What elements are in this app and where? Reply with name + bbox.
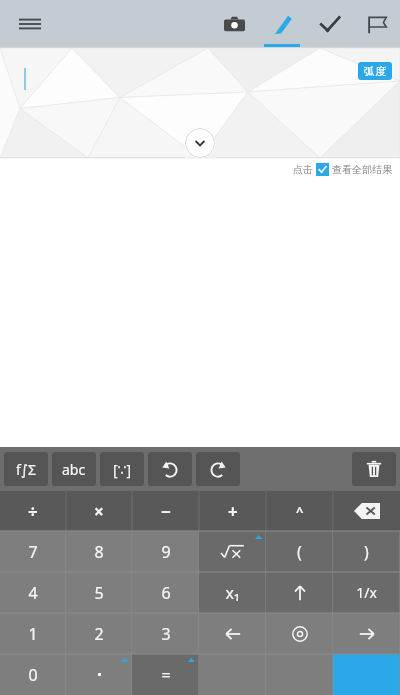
button[interactable]: Confirm xyxy=(306,0,354,48)
button[interactable]: + xyxy=(199,491,266,531)
button[interactable]: 弧度 xyxy=(358,62,392,80)
staticText: f∫Σ xyxy=(16,460,37,479)
staticText: x₁ xyxy=(225,582,240,604)
button[interactable] xyxy=(333,613,400,654)
button[interactable]: 9 xyxy=(132,531,199,572)
staticText: = xyxy=(161,664,171,686)
staticText: 6 xyxy=(161,582,171,604)
button[interactable]: 3 xyxy=(132,613,199,654)
staticText: abc xyxy=(62,460,86,479)
button[interactable] xyxy=(266,572,333,613)
staticText: 7 xyxy=(28,541,38,563)
staticText: 查看全部结果 xyxy=(332,163,392,176)
button[interactable] xyxy=(266,613,333,654)
button[interactable]: 5 xyxy=(66,572,132,613)
button[interactable]: 0 xyxy=(0,654,66,695)
button[interactable]: Redo xyxy=(196,452,240,486)
staticText: 1 xyxy=(28,623,38,645)
button[interactable]: ^ xyxy=(266,491,333,531)
button[interactable]: = xyxy=(132,654,199,695)
staticText: ( xyxy=(297,541,302,563)
button[interactable]: ÷ xyxy=(0,491,66,531)
button[interactable]: 8 xyxy=(66,531,132,572)
staticText: 9 xyxy=(161,541,171,563)
button[interactable]: 1 xyxy=(0,613,66,654)
button[interactable]: 4 xyxy=(0,572,66,613)
button[interactable]: Edit xyxy=(258,0,306,48)
staticText: × xyxy=(94,500,104,523)
staticText: 点击 xyxy=(293,163,313,176)
button[interactable]: x₁ xyxy=(199,572,266,613)
button[interactable]: 7 xyxy=(0,531,66,572)
button[interactable]: Expand xyxy=(185,128,215,158)
button[interactable]: 2 xyxy=(66,613,132,654)
button[interactable] xyxy=(66,654,132,695)
staticText: + xyxy=(228,500,238,523)
button[interactable]: Flag xyxy=(354,0,400,48)
button[interactable]: Backspace xyxy=(333,491,400,531)
staticText: − xyxy=(161,500,171,523)
staticText: 8 xyxy=(94,541,104,563)
button[interactable]: ( xyxy=(266,531,333,572)
button[interactable]: Camera xyxy=(210,0,258,48)
button[interactable] xyxy=(333,654,400,695)
staticText: ^ xyxy=(296,502,304,520)
button[interactable]: 6 xyxy=(132,572,199,613)
staticText: 2 xyxy=(94,623,104,645)
staticText: 5 xyxy=(94,582,104,604)
button[interactable]: Menu xyxy=(10,4,50,44)
staticText: 1/x xyxy=(356,583,377,602)
button[interactable] xyxy=(199,613,266,654)
button[interactable]: Delete all xyxy=(352,452,396,486)
button[interactable]: 点击 xyxy=(293,163,392,176)
button[interactable]: Undo xyxy=(148,452,192,486)
button[interactable]: [∵] xyxy=(100,452,144,486)
button[interactable]: − xyxy=(132,491,199,531)
button[interactable] xyxy=(199,531,266,572)
staticText: 3 xyxy=(161,623,171,645)
button[interactable]: abc xyxy=(52,452,96,486)
button[interactable]: × xyxy=(66,491,132,531)
staticText: 4 xyxy=(28,582,38,604)
staticText: ) xyxy=(364,541,369,563)
staticText: ÷ xyxy=(28,500,38,523)
button[interactable]: 1/x xyxy=(333,572,400,613)
button[interactable]: ) xyxy=(333,531,400,572)
staticText: 0 xyxy=(28,664,38,686)
staticText: 弧度 xyxy=(364,64,386,78)
staticText: [∵] xyxy=(113,460,132,479)
button[interactable]: f∫Σ xyxy=(4,452,48,486)
